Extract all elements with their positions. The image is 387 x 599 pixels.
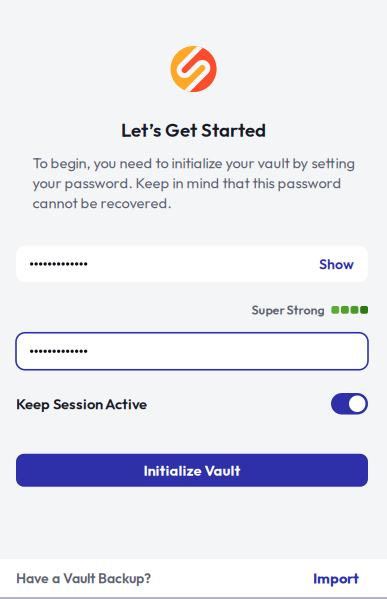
staticText: Have a Vault Backup? — [16, 569, 151, 587]
staticText: To begin, you need to initialize your va… — [32, 153, 354, 212]
staticText: Let’s Get Started — [121, 118, 266, 141]
staticText: Import — [313, 569, 359, 587]
staticText: Keep Session Active — [16, 394, 147, 413]
staticText: Super Strong — [251, 302, 324, 318]
staticText: Initialize Vault — [143, 461, 240, 479]
button[interactable]: Import — [313, 569, 359, 587]
button[interactable]: Initialize Vault — [16, 454, 368, 487]
button[interactable]: Keep Session Active — [331, 393, 368, 414]
button[interactable]: Show — [319, 255, 354, 273]
staticText: Show — [319, 255, 354, 273]
